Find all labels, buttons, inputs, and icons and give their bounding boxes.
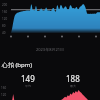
staticText: 80 (2, 24, 6, 28)
staticText: 188 (66, 73, 80, 84)
button[interactable]: 149 (5, 73, 50, 88)
staticText: 心拍 (bpm) (2, 61, 33, 69)
staticText: 120 (2, 17, 8, 21)
staticText: 149 (21, 73, 35, 84)
staticText: 平均 (25, 84, 31, 88)
staticText: 2023年8月21日 (36, 47, 65, 52)
staticText: 40 (2, 31, 6, 35)
staticText: 120 (1, 93, 7, 97)
staticText: 最大 (70, 84, 76, 88)
staticText: 200 (2, 3, 8, 7)
staticText: 160 (2, 10, 8, 14)
staticText: 160 (1, 86, 7, 90)
button[interactable]: 188 (50, 73, 95, 88)
